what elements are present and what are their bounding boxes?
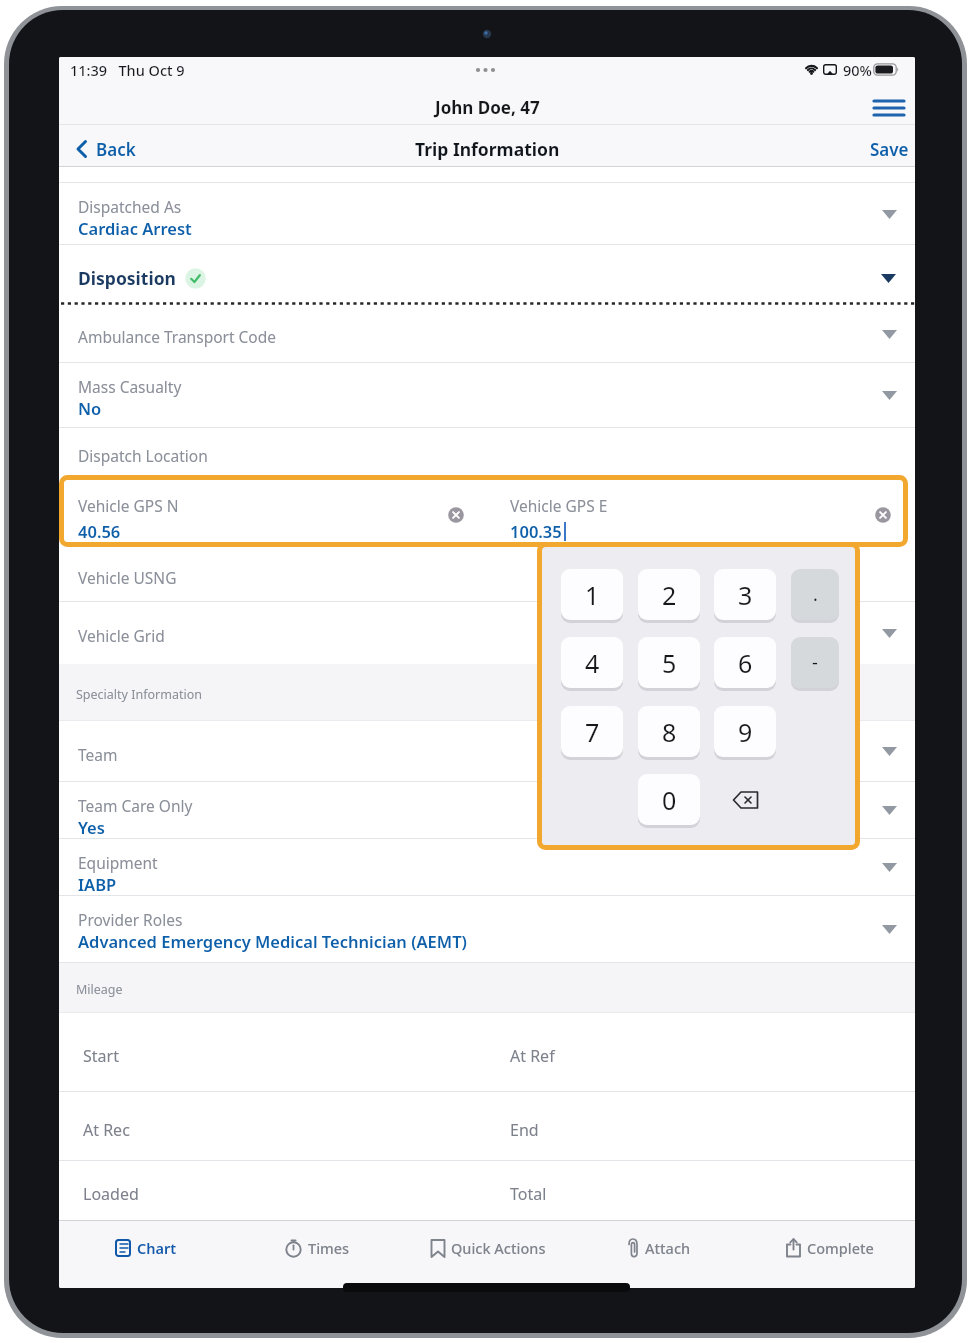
staticText: At Ref [510,1045,555,1067]
staticText: 1 [585,578,600,612]
button[interactable]: Save [839,133,909,165]
button[interactable]: Provider Roles [59,896,915,963]
staticText: 6 [738,646,753,680]
staticText: Yes [78,816,105,838]
staticText: 9 [738,715,753,749]
button[interactable]: Disposition [59,245,915,305]
staticText: 90% [843,60,872,80]
button[interactable]: Chart [59,1220,231,1276]
staticText: Chart [137,1238,177,1258]
button[interactable]: Attach [573,1220,744,1276]
button[interactable]: Dispatched As [59,183,915,245]
staticText: 0 [662,783,677,817]
button[interactable]: Times [231,1220,402,1276]
staticText: Team [78,744,118,765]
staticText: Mass Casualty [78,376,182,397]
staticText: Specialty Information [76,686,202,703]
button[interactable]: 3 [714,569,776,620]
staticText: 3 [738,578,753,612]
button[interactable]: 8 [638,706,700,757]
staticText: 4 [585,646,600,680]
button[interactable]: 0 [638,774,700,825]
staticText: Vehicle USNG [78,567,177,588]
staticText: Complete [807,1238,874,1258]
button[interactable]: 6 [714,637,776,688]
button[interactable]: Vehicle GPS N [59,477,915,547]
button[interactable]: Ambulance Transport Code [59,305,915,363]
staticText: Save [870,138,909,161]
staticText: 5 [662,646,677,680]
staticText: 100.35 [510,520,562,542]
button[interactable]: Start [59,1013,915,1092]
staticText: Total [510,1183,547,1205]
button[interactable]: Dispatch Location [59,428,915,477]
button[interactable]: Equipment [59,839,915,896]
staticText: Attach [645,1238,691,1258]
staticText: Dispatched As [78,196,182,217]
staticText: Mileage [76,981,123,998]
staticText: - [812,650,818,675]
button[interactable]: Team [59,721,915,782]
staticText: Dispatch Location [78,445,208,466]
button[interactable]: 1 [561,569,623,620]
button[interactable]: - [791,637,839,688]
staticText: Loaded [83,1183,139,1205]
staticText: 8 [662,715,677,749]
button[interactable]: Vehicle Grid [59,602,915,664]
staticText: Team Care Only [78,795,193,816]
staticText: 2 [662,578,677,612]
staticText: At Rec [83,1119,130,1141]
staticText: Vehicle GPS E [510,495,608,516]
button[interactable]: 4 [561,637,623,688]
button[interactable] [728,774,764,825]
button[interactable]: 9 [714,706,776,757]
button[interactable]: . [791,569,839,620]
staticText: End [510,1119,539,1141]
button[interactable]: Vehicle USNG [59,547,915,602]
staticText: Cardiac Arrest [78,217,192,239]
staticText: IABP [78,873,117,895]
staticText: 40.56 [78,520,121,542]
staticText: Start [83,1045,119,1067]
staticText: . [813,582,818,607]
staticText: Disposition [78,266,176,290]
button[interactable]: 7 [561,706,623,757]
button[interactable]: Team Care Only [59,782,915,839]
button[interactable]: Quick Actions [402,1220,573,1276]
staticText: Equipment [78,852,158,873]
staticText: 11:39 Thu Oct 9 [70,60,185,80]
button[interactable]: Mass Casualty [59,363,915,428]
staticText: No [78,397,102,419]
staticText: Vehicle Grid [78,625,165,646]
button[interactable]: Loaded [59,1161,915,1220]
staticText: Advanced Emergency Medical Technician (A… [78,930,467,952]
staticText: Quick Actions [451,1238,546,1258]
button[interactable]: Complete [744,1220,915,1276]
staticText: Trip Information [415,137,560,161]
staticText: Provider Roles [78,909,183,930]
button[interactable]: Back [71,133,181,165]
button[interactable]: 2 [638,569,700,620]
button[interactable]: 5 [638,637,700,688]
staticText: Vehicle GPS N [78,495,179,516]
button[interactable]: At Rec [59,1092,915,1161]
staticText: John Doe, 47 [435,96,540,119]
staticText: Back [96,138,136,161]
button[interactable] [872,97,906,123]
staticText: 7 [585,715,600,749]
staticText: Ambulance Transport Code [78,326,277,347]
staticText: Times [308,1238,350,1258]
